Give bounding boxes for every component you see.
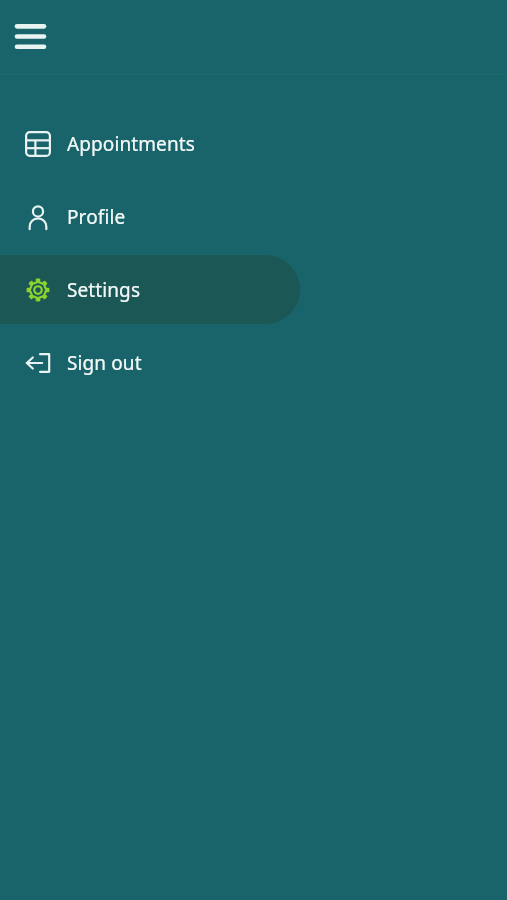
button[interactable]: Settings [0, 255, 300, 324]
staticText: Sign out [67, 350, 142, 376]
button[interactable]: Profile [0, 182, 507, 251]
button[interactable]: Open navigation menu [4, 10, 56, 62]
staticText: Profile [67, 204, 126, 230]
button[interactable]: Sign out [0, 328, 507, 397]
staticText: Settings [67, 277, 141, 303]
button[interactable]: Appointments [0, 109, 507, 178]
staticText: Appointments [67, 131, 195, 157]
